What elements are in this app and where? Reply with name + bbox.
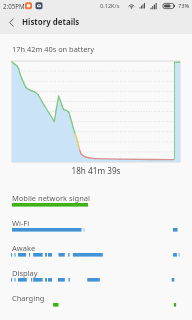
staticText: Mobile network signal bbox=[12, 193, 90, 203]
staticText: 2:05PM bbox=[3, 2, 25, 10]
staticText: Wi-Fi bbox=[12, 218, 30, 228]
staticText: 17h 42m 40s on battery bbox=[12, 44, 95, 54]
staticText: 18h 41m 39s bbox=[0, 165, 192, 176]
staticText: Charging bbox=[12, 293, 45, 303]
staticText: Awake bbox=[12, 243, 36, 253]
staticText: 73% bbox=[178, 2, 190, 10]
staticText: Display bbox=[12, 268, 38, 278]
staticText: 0.12K/s bbox=[100, 2, 120, 10]
button[interactable]: Back bbox=[0, 11, 22, 34]
staticText: History details bbox=[22, 17, 80, 28]
